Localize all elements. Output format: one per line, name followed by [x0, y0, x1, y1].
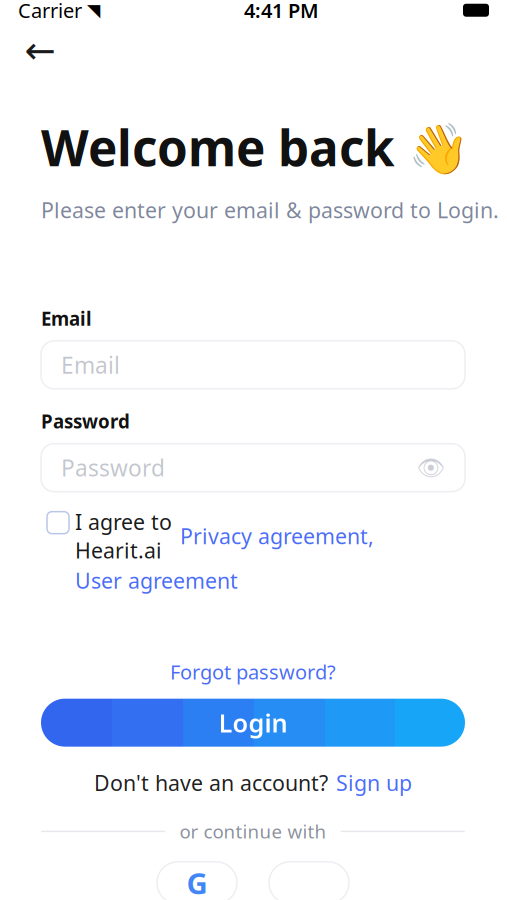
button[interactable]: Continue with Apple: [269, 862, 349, 900]
button[interactable]: Sign up: [336, 769, 412, 797]
staticText: Email: [61, 350, 120, 380]
staticText: I agree to Hearit.ai: [75, 508, 172, 564]
staticText: Login: [218, 706, 287, 739]
button[interactable]: Continue with Google: [157, 862, 237, 900]
staticText: 👁: [416, 455, 445, 481]
button[interactable]: Back: [18, 28, 62, 72]
button[interactable]: Privacy agreement,: [180, 522, 374, 550]
button[interactable]: User agreement: [75, 566, 238, 595]
staticText: Carrier: [18, 0, 82, 24]
button[interactable]: I agree to the agreements: [41, 508, 75, 538]
staticText: G: [186, 863, 207, 900]
staticText: ←: [24, 29, 55, 71]
staticText: User agreement: [75, 566, 238, 595]
staticText: Privacy agreement,: [180, 522, 374, 550]
staticText: Welcome back 👋: [41, 114, 469, 180]
staticText: Please enter your email & password to Lo…: [41, 196, 499, 224]
button[interactable]: Forgot password?: [41, 657, 465, 687]
staticText: Sign up: [336, 769, 412, 797]
button[interactable]: Show password: [417, 454, 445, 482]
staticText: Email: [41, 306, 92, 331]
button[interactable]: Login: [41, 699, 465, 747]
staticText: Password: [41, 409, 130, 434]
staticText: Forgot password?: [170, 658, 336, 685]
staticText: Don't have an account?: [94, 769, 328, 797]
staticText: 4:41 PM: [244, 0, 319, 24]
staticText: ◥: [87, 0, 100, 20]
staticText: or continue with: [179, 819, 326, 844]
staticText: Password: [61, 453, 165, 483]
